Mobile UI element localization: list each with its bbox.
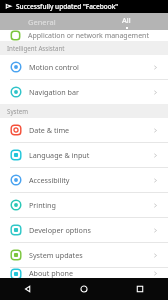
button[interactable]: System updates — [0, 243, 168, 267]
staticText: Accessibility — [29, 175, 70, 185]
staticText: About phone — [29, 268, 73, 278]
staticText: Successfully updated "Facebook" — [16, 2, 119, 11]
other: Notification — [5, 3, 12, 10]
button[interactable]: Developer options — [0, 218, 168, 242]
button[interactable]: Navigation bar — [0, 80, 168, 104]
staticText: Printing — [29, 200, 56, 210]
button[interactable]: All — [84, 13, 168, 30]
button[interactable]: Home — [56, 278, 112, 300]
button[interactable]: Motion control — [0, 55, 168, 79]
staticText: System updates — [29, 250, 83, 260]
button[interactable]: Accessibility — [0, 168, 168, 192]
button[interactable]: Printing — [0, 193, 168, 217]
staticText: System — [7, 107, 29, 115]
button[interactable]: Back — [0, 278, 56, 300]
button[interactable]: General — [0, 13, 84, 30]
button[interactable]: About phone — [0, 268, 168, 278]
button[interactable]: Language & input — [0, 143, 168, 167]
staticText: All — [122, 15, 131, 25]
button[interactable]: Date & time — [0, 118, 168, 142]
staticText: General — [28, 17, 56, 27]
staticText: Date & time — [29, 125, 70, 135]
staticText: Developer options — [29, 225, 91, 235]
staticText: Intelligent Assistant — [7, 44, 65, 52]
staticText: Language & input — [29, 150, 90, 160]
staticText: Motion control — [29, 62, 79, 72]
button[interactable]: Recents — [112, 278, 168, 300]
button[interactable]: Application or network management — [0, 30, 168, 41]
staticText: Navigation bar — [29, 87, 79, 97]
staticText: Application or network management — [28, 31, 149, 41]
